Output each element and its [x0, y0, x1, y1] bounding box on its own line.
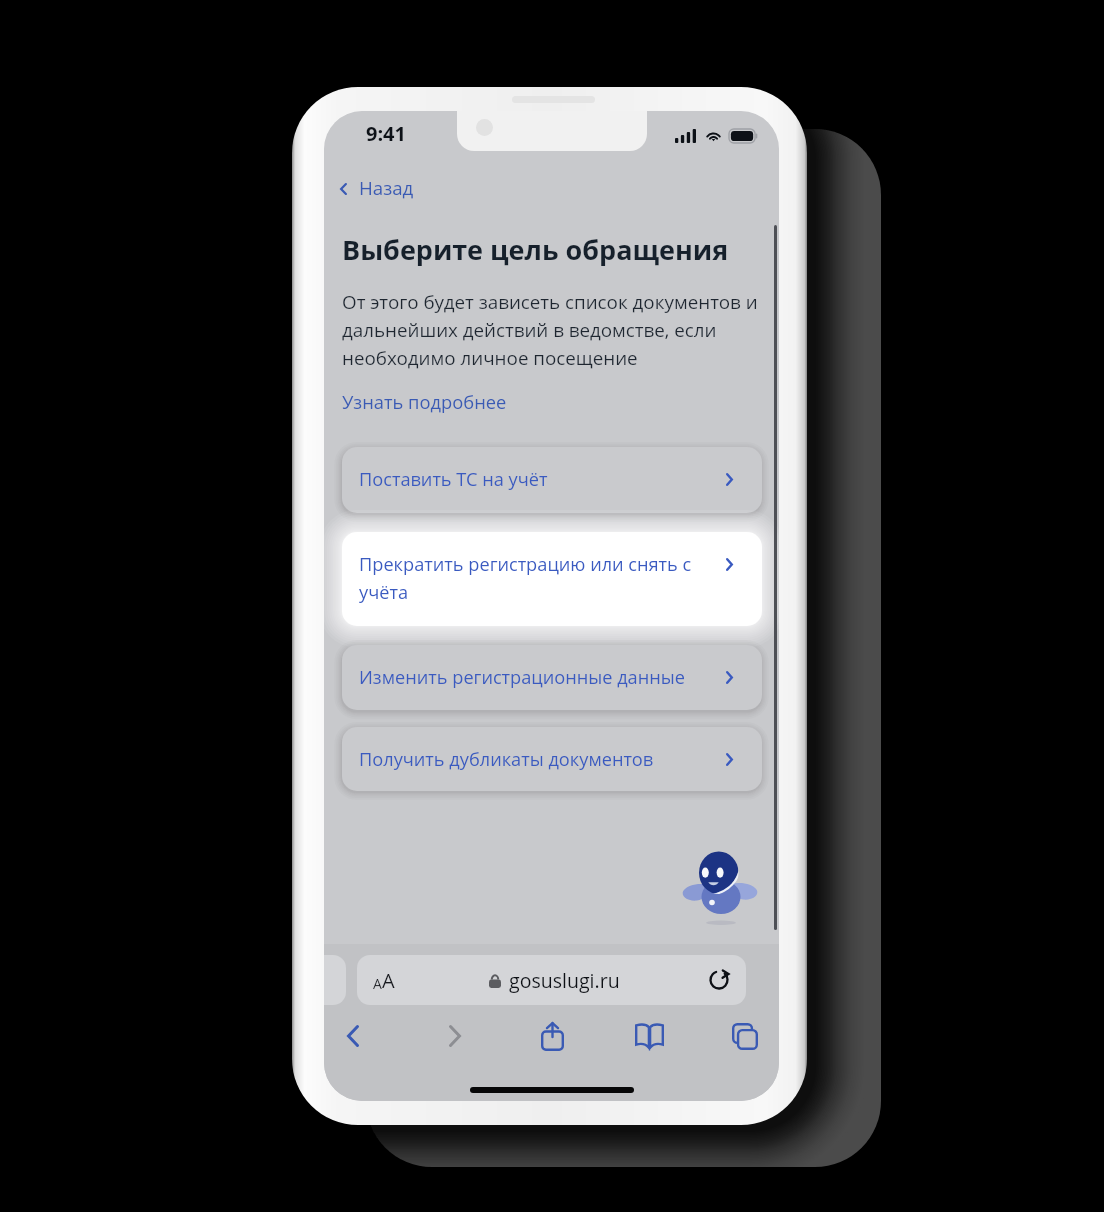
button[interactable]: Получить дубликаты документов — [342, 727, 762, 791]
button[interactable]: Изменить регистрационные данные — [342, 645, 762, 710]
button[interactable]: Назад — [332, 170, 434, 207]
button[interactable]: Поставить ТС на учёт — [342, 447, 762, 513]
button[interactable]: Forward — [433, 1014, 477, 1058]
staticText: A — [382, 967, 395, 994]
button[interactable]: Share — [530, 1014, 574, 1058]
button[interactable]: Прекратить регистрацию или снять с учёта — [342, 532, 762, 626]
staticText: Поставить ТС на учёт — [359, 467, 695, 492]
staticText: gosuslugi.ru — [509, 967, 620, 994]
button[interactable]: A — [357, 955, 746, 1005]
staticText: Прекратить регистрацию или снять с учёта — [359, 552, 695, 604]
button[interactable]: Back — [331, 1014, 375, 1058]
staticText: Узнать подробнее — [342, 389, 507, 414]
button[interactable]: Узнать подробнее — [334, 383, 515, 420]
staticText: От этого будет зависеть список документо… — [342, 289, 766, 370]
staticText: 9:41 — [366, 120, 406, 147]
staticText: Получить дубликаты документов — [359, 747, 695, 772]
staticText: A — [373, 974, 382, 993]
button[interactable]: Reload — [704, 965, 734, 995]
staticText: Назад — [359, 175, 414, 200]
button[interactable]: Tabs — [723, 1014, 767, 1058]
staticText: Выберите цель обращения — [342, 231, 729, 268]
staticText: Изменить регистрационные данные — [359, 665, 695, 690]
button[interactable]: Bookmarks — [627, 1014, 671, 1058]
